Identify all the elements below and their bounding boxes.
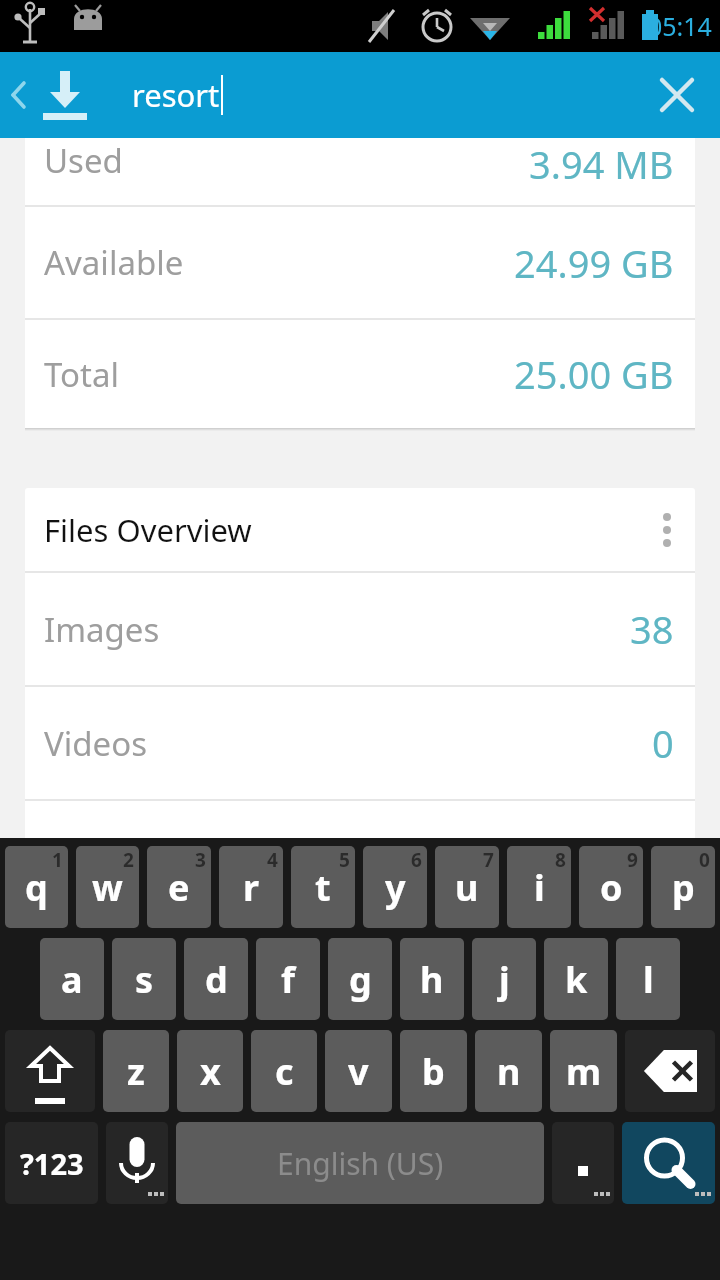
staticText: 05:14 [648,9,712,43]
button[interactable]: h [400,938,464,1020]
button[interactable]: t [291,846,355,928]
button[interactable]: b [400,1030,467,1112]
staticText: 2 [123,847,134,873]
staticText: resort [132,74,220,116]
staticText: 4 [267,847,278,873]
button[interactable]: c [251,1030,317,1112]
button[interactable]: u [435,846,499,928]
staticText: English (US) [277,1143,444,1184]
staticText: 6 [411,847,422,873]
staticText: a [61,955,83,1004]
button[interactable]: d [184,938,248,1020]
button[interactable]: Used [25,138,695,205]
staticText: 1 [52,847,63,873]
button[interactable]: y [363,846,427,928]
staticText: Available [44,240,184,285]
button[interactable]: Clear query [634,52,720,138]
staticText: b [422,1047,445,1096]
button[interactable]: v [325,1030,392,1112]
button[interactable]: f [256,938,320,1020]
button[interactable]: resort [132,74,610,116]
button[interactable]: Images [25,573,695,685]
staticText: Images [44,607,160,652]
staticText: 38 [630,603,674,655]
button[interactable]: Files Overview [25,488,695,571]
button[interactable]: g [328,938,392,1020]
button[interactable]: s [112,938,176,1020]
button[interactable]: English (US) [176,1122,544,1204]
button[interactable]: z [103,1030,169,1112]
staticText: e [168,863,190,912]
staticText: y [385,863,406,912]
button[interactable]: r [219,846,283,928]
staticText: 5 [339,847,350,873]
staticText: 0 [652,717,674,769]
staticText: 25.00 GB [514,348,674,400]
staticText: g [349,955,372,1004]
staticText: 9 [627,847,638,873]
button[interactable]: Search [622,1122,715,1204]
staticText: d [205,955,228,1004]
staticText: i [534,863,545,912]
staticText: 3.94 MB [529,138,674,190]
button[interactable] [552,1122,614,1204]
button[interactable]: Videos [25,687,695,799]
staticText: m [566,1047,602,1096]
button[interactable]: Voice input [106,1122,168,1204]
button[interactable]: Shift [5,1030,95,1112]
button[interactable]: e [147,846,211,928]
button[interactable]: i [507,846,571,928]
staticText: r [243,863,260,912]
staticText: w [92,863,123,912]
staticText: 7 [483,847,494,873]
button[interactable]: m [550,1030,617,1112]
staticText: o [600,863,623,912]
button[interactable]: l [616,938,680,1020]
button[interactable]: Navigate up, Downloads [0,52,104,138]
staticText: s [135,955,154,1004]
button[interactable]: j [472,938,536,1020]
staticText: z [127,1047,145,1096]
button[interactable]: w [76,846,139,928]
staticText: 24.99 GB [514,237,674,289]
staticText: x [200,1047,221,1096]
staticText: Files Overview [44,509,252,551]
staticText: t [315,863,331,912]
button[interactable]: Total [25,320,695,428]
staticText: h [420,955,444,1004]
staticText: j [499,955,510,1004]
staticText: n [497,1047,521,1096]
staticText: Total [44,352,119,397]
staticText: ?123 [20,1144,84,1183]
staticText: 0 [699,847,710,873]
staticText: c [275,1047,294,1096]
staticText: q [25,863,48,912]
button[interactable]: Delete [625,1030,715,1112]
staticText: 8 [555,847,566,873]
staticText: k [565,955,588,1004]
button[interactable]: ?123 [5,1122,98,1204]
staticText: Used [44,138,123,183]
button[interactable]: p [651,846,715,928]
button[interactable]: n [475,1030,542,1112]
button[interactable]: Available [25,207,695,318]
button[interactable]: More options [639,488,695,571]
button[interactable]: a [40,938,104,1020]
staticText: 3 [195,847,206,873]
staticText: u [455,863,479,912]
button[interactable]: k [544,938,608,1020]
staticText: l [643,955,654,1004]
staticText: v [348,1047,369,1096]
staticText: f [281,955,295,1004]
button[interactable]: x [177,1030,243,1112]
staticText: Videos [44,721,147,766]
button[interactable]: o [579,846,643,928]
button[interactable]: q [5,846,68,928]
staticText: p [672,863,695,912]
